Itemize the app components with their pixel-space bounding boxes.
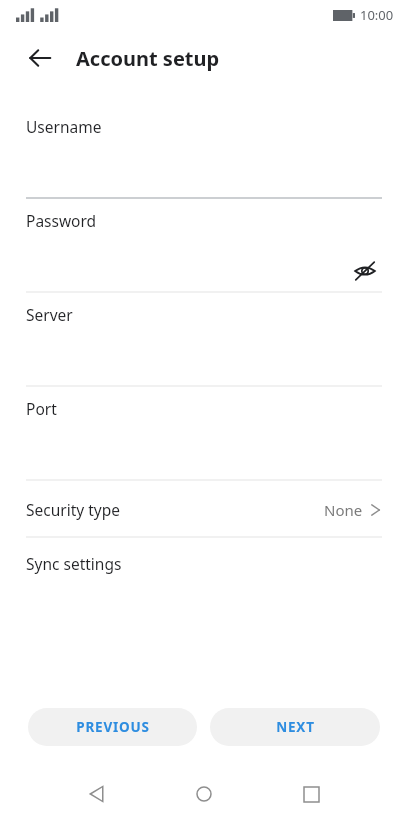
button[interactable]: Home — [182, 772, 226, 816]
button[interactable]: PREVIOUS — [28, 708, 197, 746]
button[interactable]: Back — [75, 772, 119, 816]
button[interactable]: Password — [0, 200, 408, 294]
staticText: PREVIOUS — [76, 718, 150, 736]
button[interactable]: Show password — [348, 254, 382, 288]
button[interactable]: Server — [0, 294, 408, 388]
staticText: Port — [26, 398, 57, 419]
staticText: Security type — [26, 499, 120, 520]
staticText: Account setup — [76, 45, 220, 72]
button[interactable]: Username — [0, 106, 408, 200]
staticText: Password — [26, 210, 97, 231]
button[interactable]: NEXT — [210, 708, 380, 746]
staticText: None — [324, 500, 363, 520]
button[interactable]: Recent apps — [289, 772, 333, 816]
button[interactable]: Port — [0, 388, 408, 482]
button[interactable]: Security type — [0, 482, 408, 539]
button[interactable]: Sync settings — [0, 539, 408, 587]
staticText: NEXT — [276, 718, 315, 736]
button[interactable]: Back — [18, 36, 62, 80]
staticText: Server — [26, 304, 73, 325]
staticText: 10:00 — [360, 6, 394, 24]
staticText: Sync settings — [26, 553, 122, 574]
staticText: Username — [26, 116, 102, 137]
